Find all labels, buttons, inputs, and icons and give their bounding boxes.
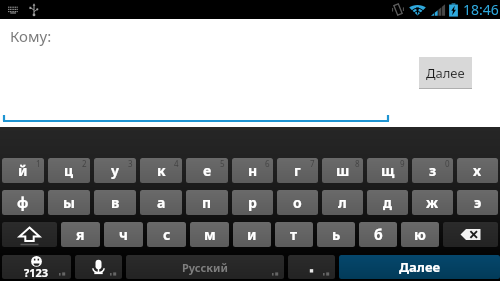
staticText: Далее <box>426 64 465 82</box>
button[interactable]: ь <box>317 222 355 247</box>
button[interactable]: Далее <box>419 57 472 88</box>
staticText: я <box>76 225 85 244</box>
button[interactable]: г <box>277 158 318 183</box>
button[interactable]: н <box>232 158 273 183</box>
button[interactable]: ж <box>412 190 453 215</box>
staticText: 6 <box>265 158 270 169</box>
button[interactable]: Shift <box>2 222 57 247</box>
staticText: 4 <box>174 158 179 169</box>
button[interactable]: и <box>233 222 271 247</box>
staticText: з <box>429 161 437 180</box>
button[interactable]: м <box>190 222 229 247</box>
button[interactable]: о <box>277 190 318 215</box>
staticText: 0 <box>445 158 450 169</box>
button[interactable]: ш <box>322 158 363 183</box>
button[interactable]: ы <box>48 190 90 215</box>
button[interactable]: с <box>147 222 186 247</box>
staticText: к <box>157 161 166 180</box>
staticText: ж <box>426 193 439 212</box>
staticText: й <box>18 161 28 180</box>
staticText: н <box>248 161 258 180</box>
button[interactable]: ч <box>104 222 143 247</box>
staticText: ф <box>17 193 29 212</box>
staticText: в <box>111 193 120 212</box>
button[interactable]: Symbols <box>2 255 71 279</box>
staticText: 7 <box>310 158 315 169</box>
staticText: и <box>247 225 257 244</box>
staticText: е <box>203 161 212 180</box>
button[interactable]: д <box>367 190 408 215</box>
button[interactable]: х <box>457 158 498 183</box>
staticText: д <box>383 193 392 212</box>
staticText: п <box>202 193 212 212</box>
staticText: Русский <box>182 260 228 275</box>
staticText: б <box>374 225 383 244</box>
staticText: ы <box>63 193 75 212</box>
staticText: а <box>157 193 166 212</box>
button[interactable]: в <box>94 190 136 215</box>
button[interactable]: й <box>2 158 44 183</box>
staticText: у <box>111 161 119 180</box>
staticText: ?123 <box>24 265 49 279</box>
staticText: 5 <box>220 158 225 169</box>
button[interactable]: з <box>412 158 453 183</box>
staticText: 8 <box>355 158 360 169</box>
staticText: Кому: <box>10 26 52 46</box>
button[interactable]: Backspace <box>443 222 498 247</box>
staticText: ь <box>332 225 341 244</box>
staticText: 3 <box>128 158 133 169</box>
staticText: 2 <box>82 158 87 169</box>
staticText: р <box>248 193 257 212</box>
staticText: л <box>338 193 347 212</box>
staticText: щ <box>381 161 395 180</box>
button[interactable]: я <box>61 222 100 247</box>
staticText: ю <box>414 225 426 244</box>
staticText: х <box>473 161 482 180</box>
button[interactable]: т <box>275 222 313 247</box>
button[interactable]: р <box>232 190 273 215</box>
button[interactable]: Voice input <box>75 255 122 279</box>
staticText: Далее <box>399 258 441 276</box>
button[interactable]: у <box>94 158 136 183</box>
button[interactable]: Русский <box>126 255 284 279</box>
staticText: м <box>204 225 216 244</box>
staticText: т <box>290 225 298 244</box>
staticText: ч <box>119 225 128 244</box>
button[interactable]: ц <box>48 158 90 183</box>
button[interactable]: Period <box>288 255 335 279</box>
button[interactable]: к <box>140 158 182 183</box>
staticText: ц <box>64 161 74 180</box>
button[interactable]: л <box>322 190 363 215</box>
button[interactable]: б <box>359 222 397 247</box>
staticText: о <box>293 193 302 212</box>
staticText: 18:46 <box>463 0 499 19</box>
staticText: с <box>163 225 171 244</box>
button[interactable]: ф <box>2 190 44 215</box>
staticText: 1 <box>36 158 41 169</box>
staticText: 9 <box>400 158 405 169</box>
button[interactable]: е <box>186 158 228 183</box>
staticText: г <box>294 161 301 180</box>
staticText: э <box>474 193 482 212</box>
staticText: ш <box>336 161 350 180</box>
button[interactable]: ю <box>401 222 439 247</box>
button[interactable]: Далее <box>339 255 500 279</box>
button[interactable]: а <box>140 190 182 215</box>
button[interactable]: п <box>186 190 228 215</box>
button[interactable]: щ <box>367 158 408 183</box>
button[interactable]: э <box>457 190 498 215</box>
